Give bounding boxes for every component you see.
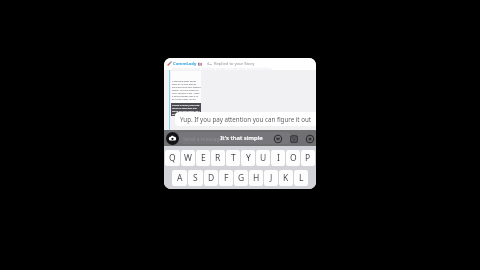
- staticText: P: [305, 152, 311, 164]
- button[interactable]: W: [181, 150, 195, 166]
- staticText: Replied to your Story: [214, 61, 255, 67]
- staticText: S: [193, 172, 198, 184]
- button[interactable]: H: [249, 170, 263, 186]
- staticText: A: [177, 172, 183, 184]
- staticText: Q: [169, 152, 176, 164]
- button[interactable]: O: [286, 150, 300, 166]
- button[interactable]: Record: [306, 135, 314, 143]
- staticText: F: [224, 172, 229, 184]
- staticText: Yup. If you pay attention you can figure…: [180, 115, 312, 123]
- staticText: I: [277, 152, 280, 164]
- button[interactable]: E: [196, 150, 210, 166]
- staticText: CommLady: [173, 61, 197, 67]
- staticText: T: [231, 152, 236, 164]
- button[interactable]: P: [301, 150, 315, 166]
- staticText: H: [253, 172, 260, 184]
- button[interactable]: G: [234, 170, 248, 186]
- button[interactable]: R: [211, 150, 225, 166]
- staticText: K: [283, 172, 289, 184]
- button[interactable]: Sticker: [290, 135, 298, 143]
- button[interactable]: A: [172, 170, 187, 186]
- button[interactable]: L: [294, 170, 308, 186]
- staticText: vinney roberts and 13 others replied to …: [172, 67, 316, 71]
- staticText: R: [215, 152, 221, 164]
- button[interactable]: D: [204, 170, 218, 186]
- button[interactable]: Send a message...: [177, 132, 292, 144]
- button[interactable]: I: [271, 150, 285, 166]
- button[interactable]: Emoji: [274, 135, 282, 143]
- staticText: W: [184, 152, 192, 164]
- staticText: Send a message...: [183, 135, 227, 142]
- staticText: Y: [246, 152, 251, 164]
- button[interactable]: Camera: [166, 132, 179, 145]
- staticText: O: [290, 152, 297, 164]
- button[interactable]: Y: [241, 150, 255, 166]
- staticText: E: [201, 152, 206, 164]
- staticText: s suprising what hands want us to stop f…: [172, 80, 201, 101]
- staticText: It's that simple: [220, 134, 263, 142]
- staticText: D: [208, 172, 215, 184]
- staticText: L: [299, 172, 304, 184]
- button[interactable]: Yup. If you pay attention you can figure…: [175, 112, 316, 126]
- button[interactable]: Q: [165, 150, 180, 166]
- button[interactable]: T: [226, 150, 240, 166]
- button[interactable]: F: [219, 170, 233, 186]
- staticText: J: [270, 172, 273, 184]
- staticText: G: [238, 172, 245, 184]
- button[interactable]: S: [188, 170, 203, 186]
- staticText: It what is probe, even that not by to pe…: [172, 104, 201, 116]
- staticText: U: [260, 152, 267, 164]
- button[interactable]: J: [264, 170, 278, 186]
- button[interactable]: U: [256, 150, 270, 166]
- button[interactable]: K: [279, 170, 293, 186]
